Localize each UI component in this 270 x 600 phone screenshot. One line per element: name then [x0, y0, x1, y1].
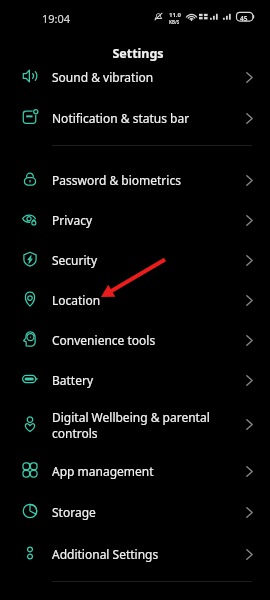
staticText: Storage	[52, 504, 224, 520]
staticText: Security	[52, 252, 224, 268]
staticText: Sound & vibration	[52, 69, 224, 85]
staticText: 11.0	[169, 11, 181, 19]
staticText: Password & biometrics	[52, 172, 224, 188]
staticText: 45	[240, 14, 248, 23]
staticText: KB/S	[169, 19, 180, 25]
button[interactable]: Security	[0, 240, 270, 280]
button[interactable]: Notification & status bar	[0, 98, 270, 138]
staticText: Additional Settings	[52, 546, 224, 562]
button[interactable]: App management	[0, 451, 270, 491]
button[interactable]: Location	[0, 280, 270, 320]
staticText: Battery	[52, 372, 224, 388]
button[interactable]: Digital Wellbeing & parental controls	[0, 399, 270, 450]
staticText: Digital Wellbeing & parental controls	[52, 409, 224, 441]
button[interactable]: Sound & vibration	[0, 57, 270, 97]
staticText: App management	[52, 463, 224, 479]
button[interactable]: Password & biometrics	[0, 160, 270, 200]
staticText: 19:04	[42, 11, 71, 26]
staticText: Location	[52, 292, 224, 308]
staticText: Notification & status bar	[52, 110, 224, 126]
button[interactable]: Additional Settings	[0, 534, 270, 574]
staticText: Privacy	[52, 212, 224, 228]
button[interactable]: Privacy	[0, 200, 270, 240]
button[interactable]: Battery	[0, 360, 270, 400]
button[interactable]: Storage	[0, 492, 270, 532]
staticText: Convenience tools	[52, 332, 224, 348]
staticText: Settings	[3, 45, 270, 62]
button[interactable]: Convenience tools	[0, 320, 270, 360]
